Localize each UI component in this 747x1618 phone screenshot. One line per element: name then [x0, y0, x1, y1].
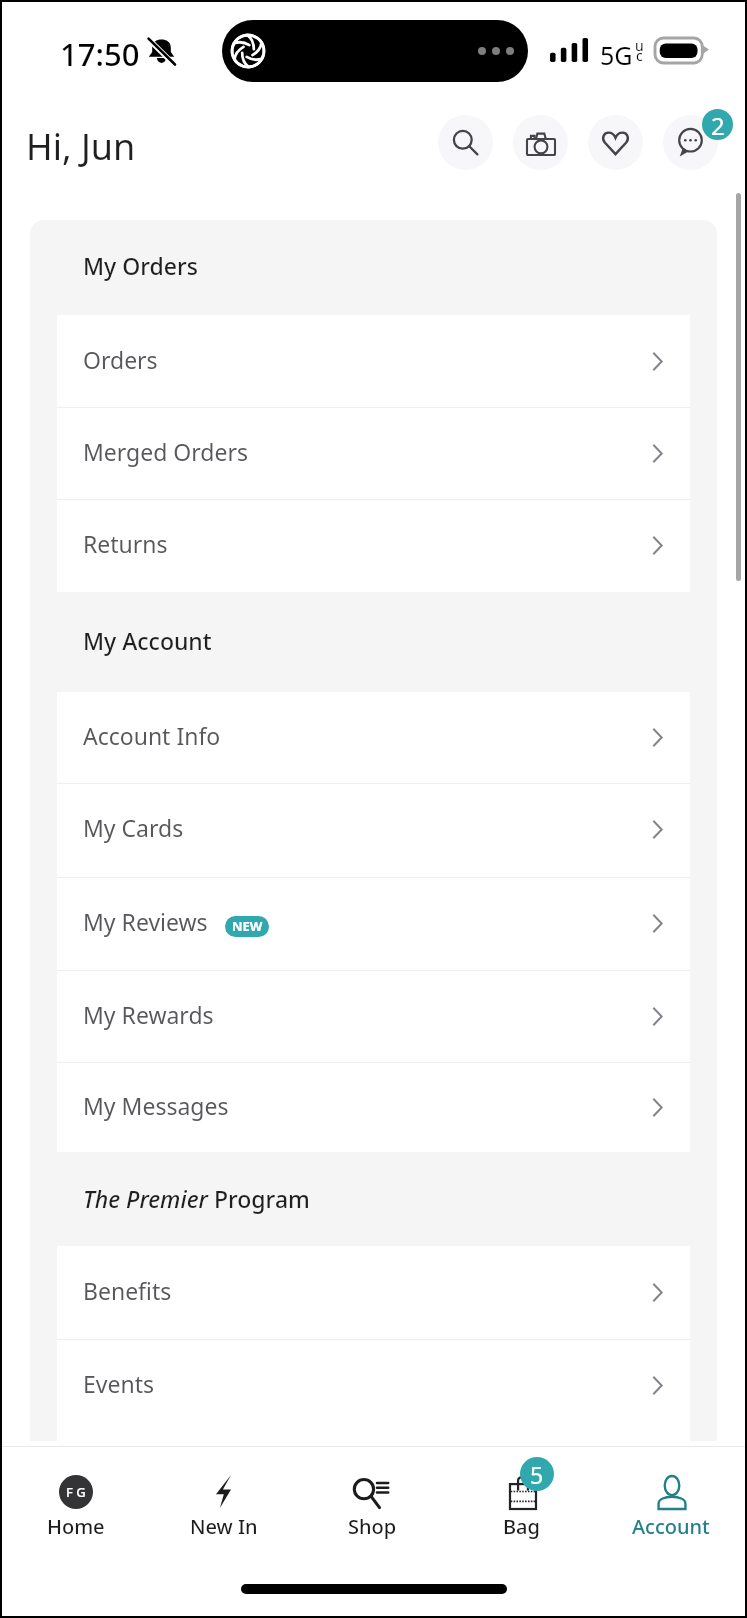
staticText: My Account [83, 625, 212, 656]
staticText: u [635, 36, 644, 55]
button[interactable]: Shop [298, 1468, 447, 1540]
button[interactable]: 5 [447, 1468, 596, 1540]
staticText: 2 [711, 109, 725, 140]
button[interactable]: My Rewards [57, 970, 690, 1062]
staticText: Bag [503, 1513, 540, 1540]
button[interactable]: Benefits [57, 1246, 690, 1338]
staticText: My Messages [83, 1090, 229, 1121]
staticText: Returns [83, 528, 168, 559]
staticText: Home [47, 1513, 105, 1540]
button[interactable]: Merged Orders [57, 407, 690, 499]
button[interactable]: Events [57, 1339, 690, 1431]
staticText: 5 [530, 1459, 544, 1490]
button[interactable]: Messages [663, 115, 718, 170]
staticText: Benefits [83, 1275, 172, 1306]
staticText: My Cards [83, 812, 184, 843]
staticText: c [636, 46, 643, 65]
staticText: Hi, Jun [26, 122, 136, 171]
staticText: Account Info [83, 720, 221, 751]
button[interactable]: Search [438, 115, 493, 170]
staticText: Events [83, 1368, 154, 1399]
staticText: Merged Orders [83, 436, 248, 467]
staticText: F G [66, 1483, 86, 1501]
staticText: 5G [600, 38, 633, 72]
staticText: Orders [83, 344, 158, 375]
staticText: My Rewards [83, 999, 214, 1030]
button[interactable]: Returns [57, 499, 690, 591]
button[interactable]: My Reviews [57, 877, 690, 969]
staticText: My Reviews [83, 906, 208, 937]
button[interactable]: Orders [57, 315, 690, 407]
staticText: My Orders [83, 250, 198, 281]
button[interactable]: Account [596, 1468, 745, 1540]
staticText: New In [190, 1513, 258, 1540]
button[interactable]: Account Info [57, 692, 690, 783]
button[interactable]: Camera [513, 115, 568, 170]
button[interactable]: My Messages [57, 1062, 690, 1152]
button[interactable]: F G [2, 1468, 150, 1540]
staticText: Account [632, 1513, 710, 1540]
staticText: The Premier [83, 1183, 214, 1214]
staticText: Program [214, 1183, 310, 1214]
staticText: 17:50 [60, 33, 140, 75]
staticText: NEW [232, 917, 263, 935]
button[interactable]: New In [150, 1468, 298, 1540]
button[interactable]: Wishlist [588, 115, 643, 170]
staticText: Shop [348, 1513, 397, 1540]
button[interactable]: My Cards [57, 783, 690, 875]
